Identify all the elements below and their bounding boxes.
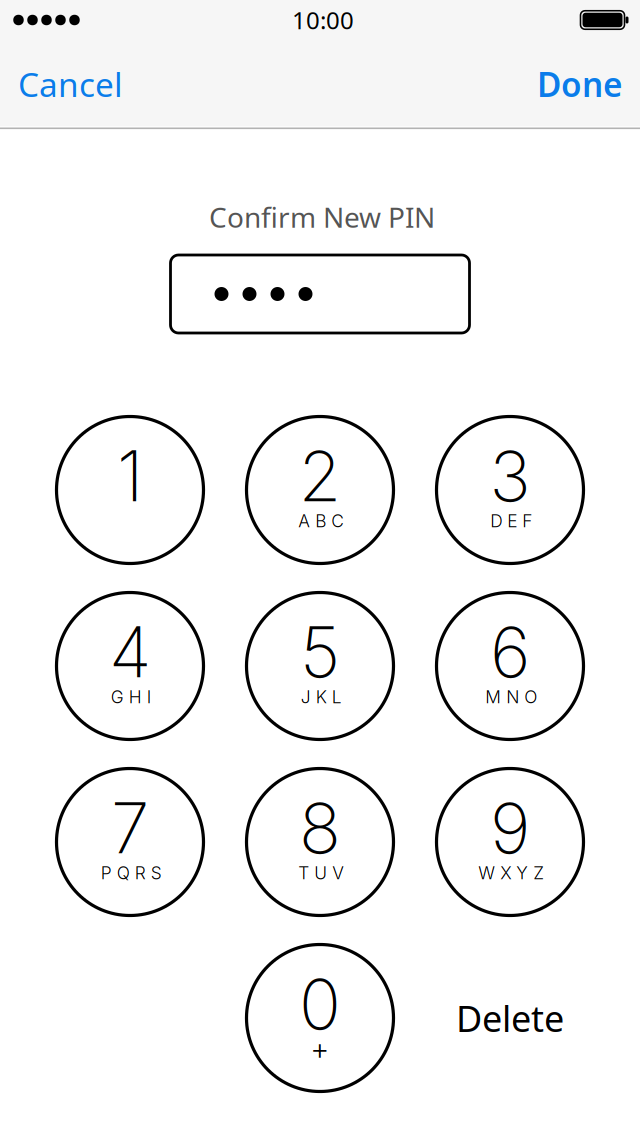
staticText: JKL [301,686,342,707]
staticText: + [310,1031,329,1067]
button[interactable]: 2 [229,402,410,577]
staticText: GHI [111,686,152,707]
button[interactable]: Cancel [0,50,138,118]
staticText: Done [537,62,623,106]
staticText: MNO [485,686,537,707]
button[interactable]: 9 [419,754,600,929]
staticText: Confirm New PIN [209,198,435,236]
staticText: 3 [489,434,530,518]
button[interactable]: Done [519,50,640,118]
button[interactable]: 3 [419,402,600,577]
staticText: Delete [456,994,564,1042]
button[interactable]: 6 [419,578,600,753]
staticText: PQRS [101,862,162,883]
button[interactable]: 7 [39,754,220,929]
staticText: Cancel [18,62,123,106]
staticText: 0 [299,962,341,1046]
button[interactable]: 4 [39,578,220,753]
staticText: DEF [490,510,532,531]
staticText: 1 [117,434,143,518]
button[interactable]: 0 [229,930,410,1105]
staticText: 4 [109,610,151,694]
staticText: TUV [298,862,344,883]
staticText: WXYZ [478,862,544,883]
staticText: 5 [300,610,340,694]
staticText: 8 [299,786,341,870]
staticText: 9 [490,786,530,870]
staticText: 2 [298,434,341,518]
button[interactable]: 5 [229,578,410,753]
button[interactable]: Delete [421,958,599,1078]
button[interactable]: 1 [39,402,220,577]
staticText: 10:00 [292,4,354,36]
staticText: ABC [298,510,344,531]
staticText: 7 [111,786,149,870]
button[interactable]: 8 [229,754,410,929]
staticText: 6 [490,610,530,694]
